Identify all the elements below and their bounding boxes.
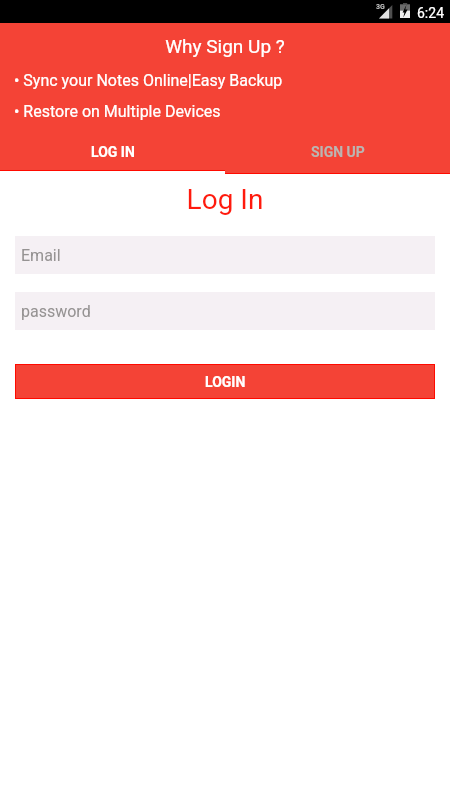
staticText: 6:24 — [417, 5, 444, 21]
other: Battery charging — [400, 3, 410, 18]
staticText: Why Sign Up ? — [0, 35, 450, 57]
button[interactable]: password — [15, 292, 435, 330]
staticText: 3G — [376, 3, 385, 11]
staticText: • Restore on Multiple Devices — [14, 102, 221, 121]
other: Mobile signal — [379, 5, 393, 19]
button[interactable]: LOG IN — [0, 136, 225, 174]
button[interactable]: Email — [15, 236, 435, 274]
button[interactable]: SIGN UP — [225, 136, 450, 174]
staticText: LOGIN — [205, 374, 246, 390]
staticText: password — [21, 302, 91, 321]
staticText: LOG IN — [91, 144, 135, 160]
staticText: • Sync your Notes Online|Easy Backup — [14, 71, 283, 90]
staticText: Email — [21, 246, 61, 265]
staticText: SIGN UP — [311, 144, 365, 160]
button[interactable]: LOGIN — [16, 365, 434, 398]
staticText: Log In — [0, 183, 450, 216]
